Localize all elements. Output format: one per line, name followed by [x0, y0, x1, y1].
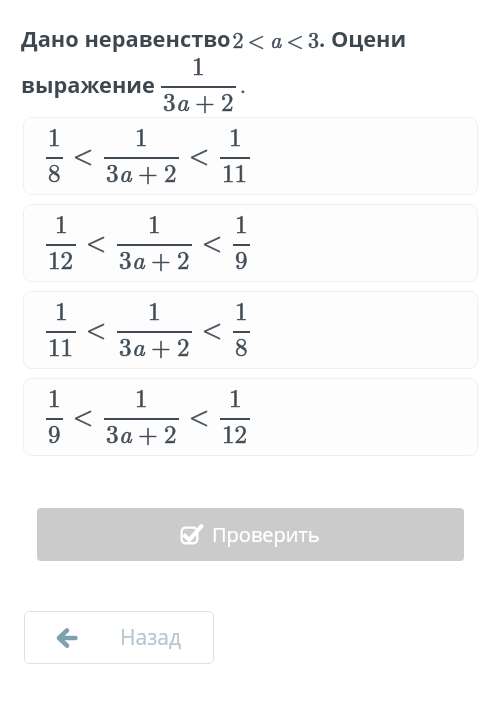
staticText: 1: [48, 379, 61, 414]
staticText: выражение: [21, 70, 161, 100]
staticText: + 2: [132, 415, 177, 450]
staticText: <: [73, 135, 94, 172]
staticText: 1: [48, 379, 61, 414]
staticText: 9: [235, 241, 248, 276]
button[interactable]: Check answer: [37, 508, 464, 561]
staticText: 11: [222, 154, 248, 189]
staticText: 3: [106, 154, 119, 189]
button[interactable]: 1: [23, 204, 478, 282]
staticText: 1: [148, 205, 161, 240]
staticText: + 2: [189, 83, 234, 118]
staticText: 3: [106, 154, 119, 189]
staticText: 8: [235, 328, 248, 363]
staticText: 1: [192, 47, 205, 82]
button[interactable]: Back: [24, 611, 214, 664]
staticText: + 2: [132, 154, 177, 189]
staticText: 2 <: [231, 23, 270, 54]
staticText: 1: [229, 379, 242, 414]
staticText: 1: [48, 118, 61, 153]
other: Back: [56, 628, 76, 648]
staticText: 1: [229, 379, 242, 414]
staticText: 3: [163, 83, 176, 118]
staticText: 1: [135, 118, 148, 153]
staticText: a: [132, 241, 145, 276]
staticText: + 2: [145, 328, 190, 363]
staticText: 3: [106, 415, 119, 450]
staticText: <: [202, 222, 223, 259]
staticText: 1: [148, 292, 161, 327]
staticText: a: [119, 415, 132, 450]
staticText: 1: [235, 292, 248, 327]
staticText: + 2: [145, 241, 190, 276]
staticText: a: [119, 415, 132, 450]
staticText: a: [176, 83, 189, 118]
staticText: a: [270, 23, 282, 54]
button[interactable]: 1: [23, 378, 478, 456]
staticText: <: [202, 222, 223, 259]
staticText: 1: [48, 118, 61, 153]
staticText: 12: [48, 241, 74, 276]
staticText: 9: [235, 241, 248, 276]
staticText: 1: [135, 379, 148, 414]
staticText: 1: [135, 118, 148, 153]
staticText: 1: [229, 118, 242, 153]
staticText: .: [240, 69, 246, 99]
staticText: 1: [235, 292, 248, 327]
staticText: 3: [106, 415, 119, 450]
staticText: a: [176, 83, 189, 118]
staticText: 1: [229, 118, 242, 153]
staticText: 1: [55, 292, 68, 327]
staticText: .: [240, 69, 246, 99]
staticText: Назад: [120, 623, 182, 652]
staticText: + 2: [145, 328, 190, 363]
staticText: <: [189, 135, 210, 172]
staticText: 11: [48, 328, 74, 363]
staticText: 3: [163, 83, 176, 118]
staticText: <: [86, 222, 107, 259]
staticText: 11: [48, 328, 74, 363]
staticText: <: [189, 135, 210, 172]
staticText: 1: [148, 292, 161, 327]
staticText: <: [86, 309, 107, 346]
staticText: <: [202, 309, 223, 346]
staticText: 12: [48, 241, 74, 276]
other: Check answer: [180, 523, 203, 546]
staticText: a: [132, 241, 145, 276]
staticText: a: [270, 23, 282, 54]
staticText: <: [73, 135, 94, 172]
staticText: 9: [48, 415, 61, 450]
staticText: 3: [119, 241, 132, 276]
staticText: 12: [222, 415, 248, 450]
staticText: Дано неравенство: [21, 24, 231, 54]
staticText: 8: [48, 154, 61, 189]
staticText: + 2: [132, 154, 177, 189]
staticText: 3: [119, 328, 132, 363]
staticText: a: [119, 154, 132, 189]
staticText: 1: [55, 292, 68, 327]
staticText: 11: [222, 154, 248, 189]
staticText: <: [73, 396, 94, 433]
staticText: 1: [55, 205, 68, 240]
staticText: < 3: [282, 23, 319, 54]
staticText: 3: [119, 328, 132, 363]
staticText: 9: [48, 415, 61, 450]
staticText: 8: [48, 154, 61, 189]
staticText: 1: [235, 205, 248, 240]
staticText: . Оцени: [319, 24, 407, 54]
staticText: 1: [55, 205, 68, 240]
staticText: 8: [235, 328, 248, 363]
staticText: + 2: [145, 241, 190, 276]
staticText: a: [132, 328, 145, 363]
staticText: 2 <: [231, 23, 270, 54]
staticText: 1: [135, 379, 148, 414]
staticText: <: [189, 396, 210, 433]
button[interactable]: 1: [23, 291, 478, 369]
staticText: <: [189, 396, 210, 433]
staticText: a: [132, 328, 145, 363]
staticText: 12: [222, 415, 248, 450]
button[interactable]: 1: [23, 117, 478, 195]
staticText: < 3: [282, 23, 319, 54]
staticText: 1: [148, 205, 161, 240]
staticText: + 2: [189, 83, 234, 118]
staticText: + 2: [132, 415, 177, 450]
